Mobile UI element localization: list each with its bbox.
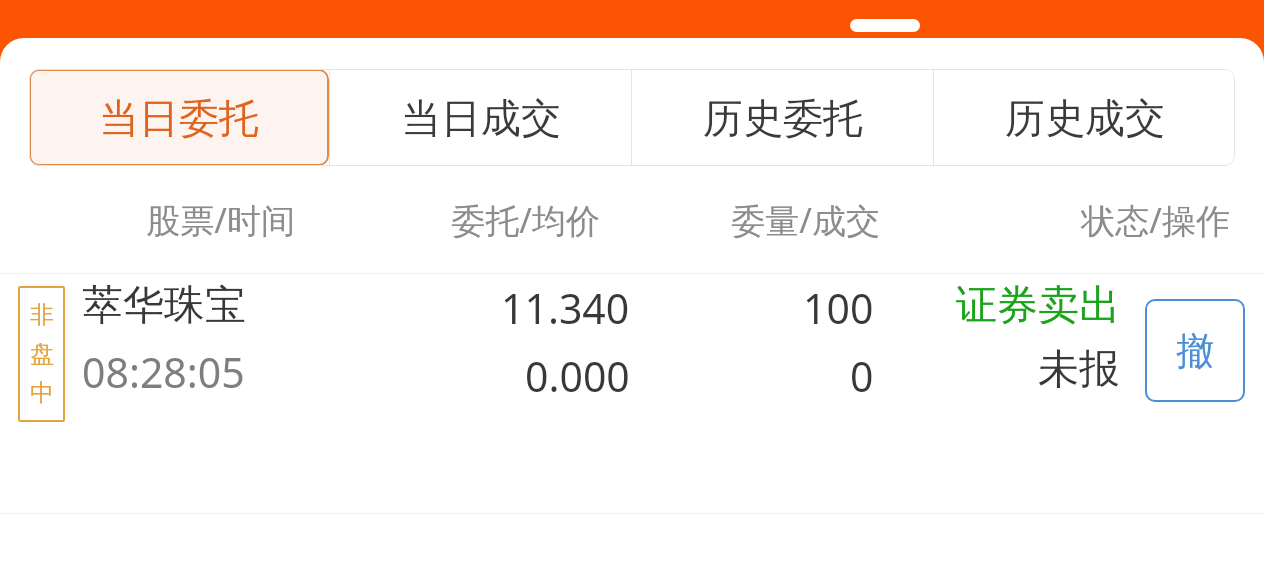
staticText: 萃华珠宝 <box>82 280 246 332</box>
staticText: 08:28:05 <box>82 344 245 400</box>
button[interactable]: 非 <box>0 274 1264 513</box>
button[interactable]: 当日委托 <box>29 69 329 166</box>
staticText: 历史成交 <box>1005 93 1165 143</box>
staticText: 证券卖出 <box>956 280 1120 332</box>
staticText: 历史委托 <box>703 93 863 143</box>
staticText: 11.340 <box>501 280 630 336</box>
staticText: 委托/均价 <box>295 197 600 243</box>
staticText: 股票/时间 <box>0 197 295 243</box>
staticText: 撤 <box>1176 327 1214 375</box>
button[interactable]: 当日成交 <box>330 69 631 166</box>
staticText: 中 <box>30 378 54 408</box>
button[interactable]: 历史成交 <box>934 69 1235 166</box>
button[interactable]: 历史委托 <box>632 69 933 166</box>
staticText: 100 <box>803 280 874 336</box>
staticText: 0.000 <box>525 348 630 404</box>
staticText: 当日成交 <box>401 93 561 143</box>
staticText: 未报 <box>1038 344 1120 396</box>
staticText: 状态/操作 <box>880 197 1230 243</box>
staticText: 当日委托 <box>99 93 259 143</box>
staticText: 0 <box>850 348 874 404</box>
button[interactable]: 撤单 <box>1145 299 1245 402</box>
staticText: 非 <box>30 300 54 330</box>
staticText: 委量/成交 <box>600 197 880 243</box>
staticText: 盘 <box>30 339 54 369</box>
